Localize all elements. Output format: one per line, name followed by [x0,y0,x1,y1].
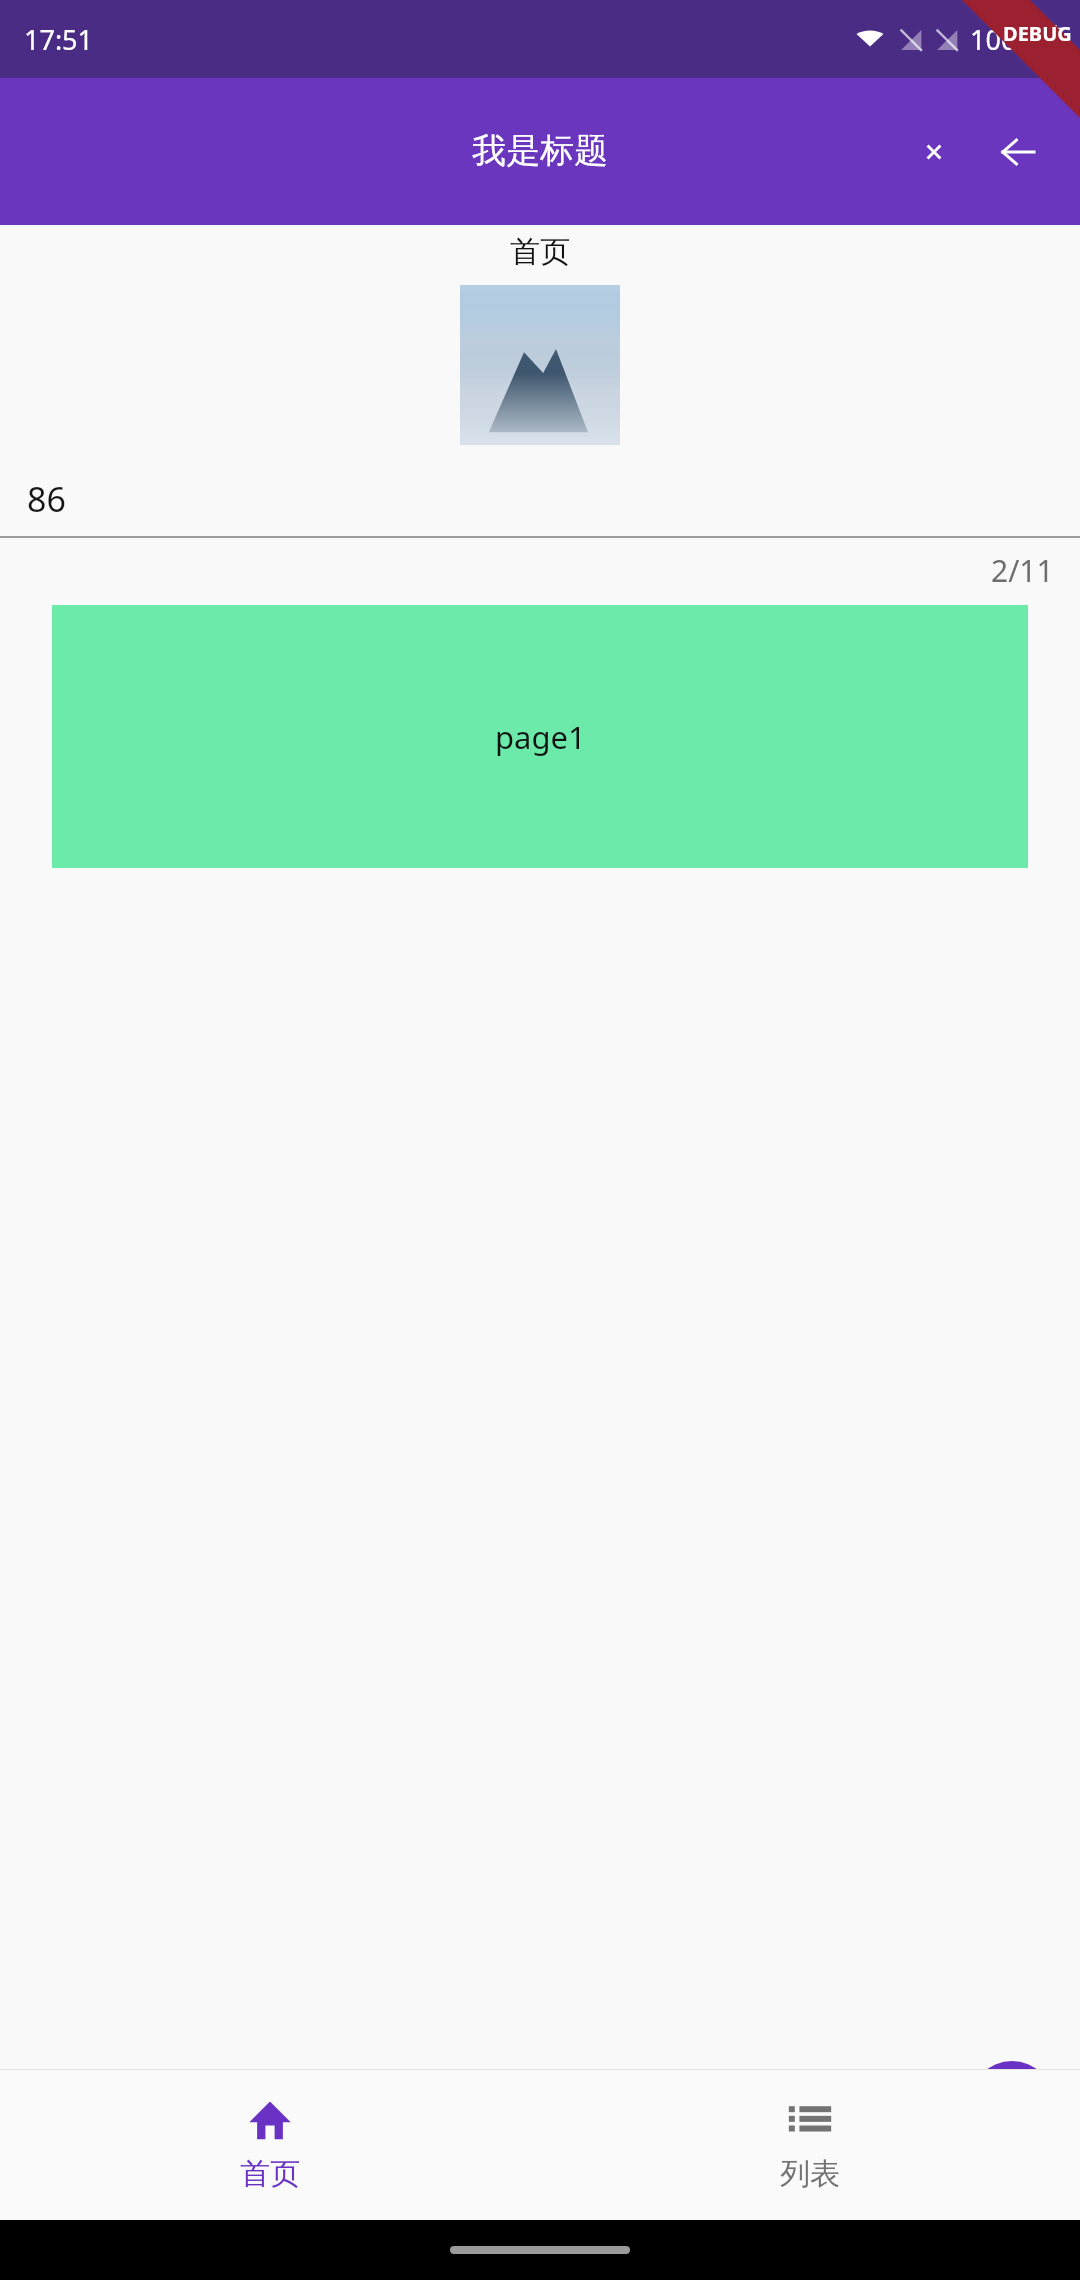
staticText: 首页 [510,233,570,271]
staticText: 列表 [780,2155,840,2193]
button[interactable]: Back [976,110,1060,194]
staticText: 17:51 [24,21,94,58]
button[interactable]: Add [970,2061,1054,2145]
staticText: 首页 [240,2155,300,2193]
staticText: page1 [495,716,586,758]
button[interactable]: page1 [52,605,1028,868]
button[interactable]: 首页 [0,2070,540,2220]
staticText: 我是标题 [472,129,608,172]
staticText: 100% [970,21,1039,58]
button[interactable]: Close [892,110,976,194]
button[interactable]: 列表 [540,2070,1080,2220]
staticText: DEBUG [1003,20,1072,47]
staticText: 2/11 [991,550,1054,591]
staticText: 86 [27,476,66,522]
